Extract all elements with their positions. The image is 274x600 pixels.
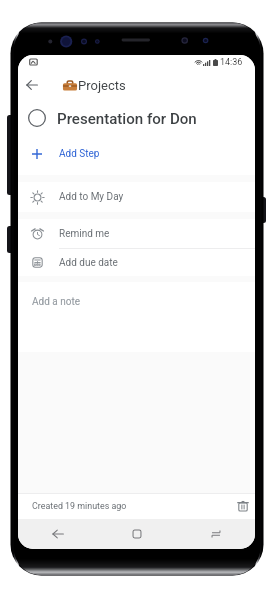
staticText: Add to My Day (59, 191, 124, 203)
button[interactable]: Add Step (18, 139, 255, 169)
button[interactable]: Back (23, 76, 41, 94)
button[interactable]: Add to My Day (18, 182, 255, 212)
staticText: Presentation for Don (57, 110, 197, 128)
button[interactable]: Add due date (18, 248, 255, 277)
staticText: Remind me (59, 228, 110, 240)
staticText: Add a note (32, 296, 81, 308)
button[interactable]: Recent apps (207, 525, 225, 543)
button[interactable]: Back (49, 525, 67, 543)
staticText: Add Step (59, 148, 100, 160)
button[interactable]: Presentation for Don (18, 104, 255, 134)
button[interactable]: Delete task (236, 499, 250, 513)
button[interactable]: Home (128, 525, 146, 543)
staticText: Created 19 minutes ago (32, 501, 127, 511)
staticText: Add due date (59, 257, 118, 269)
button[interactable]: Add a note (18, 282, 255, 352)
staticText: 14:36 (220, 57, 243, 68)
staticText: Projects (78, 78, 126, 93)
button[interactable]: Remind me (18, 219, 255, 248)
